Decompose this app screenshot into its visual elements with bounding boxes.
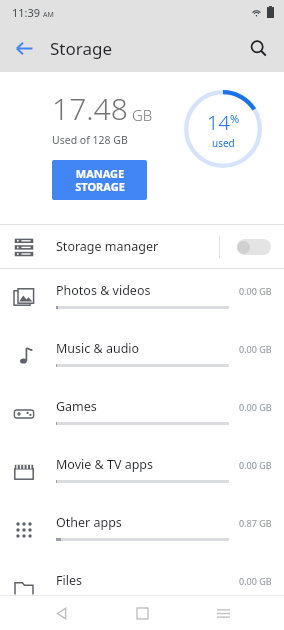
button[interactable]: Back bbox=[41, 596, 81, 630]
button[interactable]: Home bbox=[122, 596, 162, 630]
staticText: % bbox=[230, 111, 240, 126]
button[interactable]: Storage manager toggle bbox=[234, 234, 274, 260]
button[interactable]: Back bbox=[6, 30, 42, 66]
staticText: 11:39 bbox=[12, 5, 41, 20]
staticText: Storage manager bbox=[56, 238, 159, 255]
button[interactable]: Search bbox=[240, 30, 276, 66]
button[interactable]: MANAGE STORAGE bbox=[52, 160, 147, 200]
staticText: Music & audio bbox=[56, 340, 140, 357]
button[interactable]: Music & audio bbox=[0, 327, 284, 385]
staticText: GB bbox=[132, 105, 153, 125]
staticText: 0.00 GB bbox=[239, 343, 272, 355]
button[interactable]: Photos & videos bbox=[0, 269, 284, 327]
staticText: 17.48 bbox=[52, 88, 128, 129]
staticText: Movie & TV apps bbox=[56, 456, 154, 473]
staticText: 0.00 GB bbox=[239, 285, 272, 297]
staticText: 0.00 GB bbox=[239, 401, 272, 413]
staticText: MANAGE STORAGE bbox=[75, 166, 125, 194]
staticText: used bbox=[212, 136, 235, 150]
staticText: Other apps bbox=[56, 514, 122, 531]
staticText: AM bbox=[43, 10, 54, 20]
button[interactable]: Files bbox=[0, 559, 284, 617]
staticText: Photos & videos bbox=[56, 282, 151, 299]
staticText: Files bbox=[56, 572, 82, 589]
button[interactable]: Recent apps bbox=[203, 596, 243, 630]
staticText: 0.00 GB bbox=[239, 459, 272, 471]
button[interactable]: Movie & TV apps bbox=[0, 443, 284, 501]
button[interactable]: Storage manager bbox=[0, 225, 284, 268]
staticText: 14 bbox=[207, 109, 230, 136]
button[interactable]: Other apps bbox=[0, 501, 284, 559]
button[interactable]: Games bbox=[0, 385, 284, 443]
staticText: 0.87 GB bbox=[239, 517, 272, 529]
staticText: 0.00 GB bbox=[239, 575, 272, 587]
staticText: Used of 128 GB bbox=[52, 133, 128, 147]
staticText: Games bbox=[56, 398, 97, 415]
staticText: Storage bbox=[50, 37, 113, 60]
